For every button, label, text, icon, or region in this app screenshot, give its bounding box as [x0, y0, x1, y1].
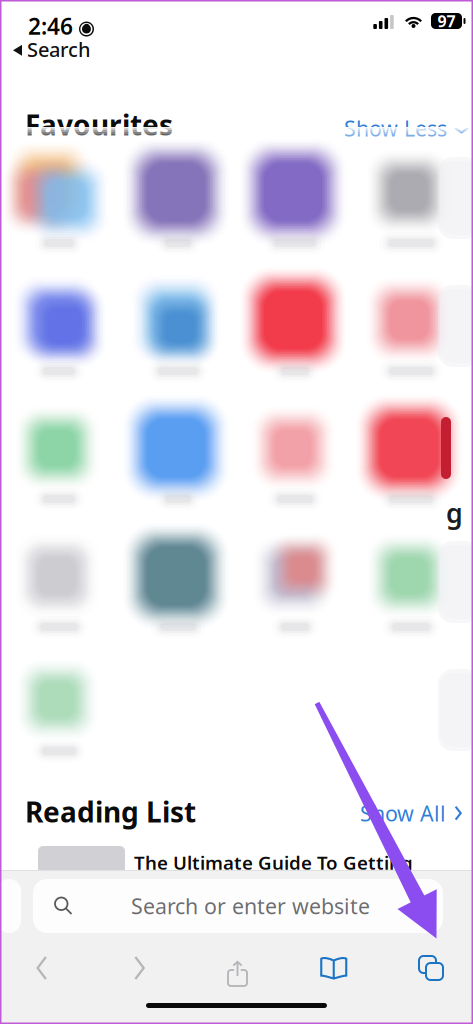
button[interactable]: Back — [12, 944, 72, 992]
button[interactable]: Show All — [357, 796, 465, 830]
staticText: The Ultimate Guide To Getting — [134, 850, 413, 875]
staticText: 97 — [437, 10, 455, 32]
button[interactable]: Bookmarks — [304, 944, 364, 992]
button[interactable]: The Ultimate Guide To Getting — [23, 838, 450, 902]
button[interactable]: Search — [9, 34, 95, 65]
staticText: Search — [27, 36, 91, 63]
button[interactable]: Forward — [109, 944, 169, 992]
staticText: 2:46 — [28, 11, 73, 41]
button[interactable]: Search or enter website — [33, 879, 443, 933]
staticText: Favourites — [25, 106, 173, 143]
button[interactable]: Share — [206, 944, 266, 992]
staticText: g — [446, 495, 463, 530]
staticText: Show Less — [344, 114, 447, 142]
staticText: Show All — [360, 799, 446, 827]
staticText: Reading List — [25, 793, 196, 830]
button[interactable]: Show Less — [341, 111, 471, 145]
button[interactable]: Tabs — [401, 944, 461, 992]
staticText: Search or enter website — [131, 892, 370, 920]
